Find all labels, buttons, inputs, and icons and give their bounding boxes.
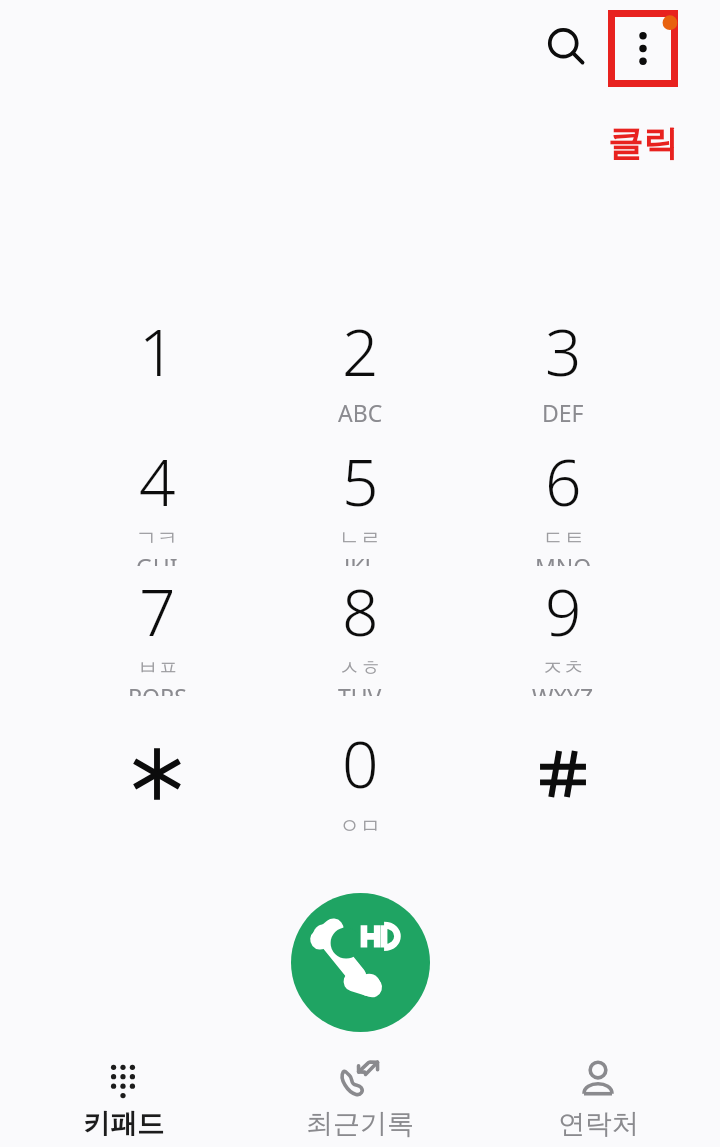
staticText: ㄷㅌ (543, 525, 585, 551)
staticText: TUV (338, 681, 382, 696)
button[interactable]: 3 (467, 308, 659, 436)
button[interactable]: 5 (264, 438, 456, 566)
button[interactable]: Call (291, 893, 430, 1032)
staticText: 9 (545, 568, 582, 655)
button[interactable]: 키패드 (8, 1050, 238, 1147)
staticText: 클릭 (598, 121, 688, 165)
staticText: PQRS (128, 681, 187, 696)
staticText: ㄱㅋ (136, 525, 178, 551)
staticText: ABC (338, 397, 383, 428)
staticText: 3 (545, 308, 582, 395)
staticText: ㅇㅁ (339, 813, 381, 839)
staticText: WXYZ (532, 681, 594, 696)
button[interactable]: 1 (61, 308, 253, 436)
button[interactable]: 8 (264, 568, 456, 696)
staticText: 5 (342, 438, 379, 525)
staticText: ㅈㅊ (542, 655, 584, 681)
staticText: 6 (545, 438, 582, 525)
staticText: JKL (344, 551, 377, 566)
button[interactable] (467, 720, 659, 848)
staticText: DEF (542, 397, 584, 428)
staticText: ㅅㅎ (339, 655, 381, 681)
staticText: 0 (342, 720, 379, 807)
staticText: MNO (535, 551, 592, 566)
staticText: 연락처 (558, 1107, 639, 1141)
button[interactable]: 연락처 (483, 1050, 713, 1147)
staticText: 2 (342, 308, 379, 395)
staticText: 최근기록 (306, 1107, 414, 1141)
staticText: ㅂㅍ (137, 655, 179, 681)
button[interactable] (61, 720, 253, 848)
staticText: 키패드 (83, 1107, 164, 1141)
button[interactable]: 7 (61, 568, 253, 696)
button[interactable]: More options (608, 10, 678, 87)
button[interactable]: 0 (264, 720, 456, 848)
button[interactable]: 9 (467, 568, 659, 696)
button[interactable]: Search (534, 14, 600, 80)
button[interactable]: 2 (264, 308, 456, 436)
staticText: 4 (139, 438, 176, 525)
staticText: 1 (139, 308, 176, 395)
button[interactable]: 6 (467, 438, 659, 566)
staticText: ㄴㄹ (339, 525, 381, 551)
staticText: GHI (136, 551, 178, 566)
button[interactable]: 최근기록 (245, 1050, 475, 1147)
button[interactable]: 4 (61, 438, 253, 566)
staticText: 7 (139, 568, 176, 655)
staticText: 8 (342, 568, 379, 655)
